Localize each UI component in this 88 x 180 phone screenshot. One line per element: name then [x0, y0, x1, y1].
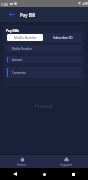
- staticText: Subscriber ID: [53, 36, 73, 40]
- staticText: Home: [17, 163, 27, 167]
- button[interactable]: Proceed: [0, 101, 88, 110]
- staticText: Support: [60, 163, 73, 167]
- button[interactable]: Support: [44, 155, 88, 168]
- button[interactable]: Mobile Number: [7, 34, 43, 41]
- staticText: Pay Bill: [20, 12, 36, 18]
- staticText: 7:28: [1, 2, 8, 6]
- button[interactable]: Mobile Number: [6, 45, 82, 52]
- button[interactable]: Subscriber ID: [44, 33, 82, 42]
- button[interactable]: Comments: [6, 67, 82, 78]
- button[interactable]: Back: [0, 7, 17, 22]
- staticText: Amount: [12, 58, 23, 62]
- button[interactable]: Back: [0, 168, 30, 180]
- staticText: Mobile Number: [12, 47, 32, 51]
- button[interactable]: Recents: [59, 168, 88, 180]
- button[interactable]: Home: [0, 155, 44, 168]
- button[interactable]: Amount: [6, 56, 82, 63]
- staticText: Comments: [12, 71, 26, 75]
- staticText: Pay Bills: [6, 29, 20, 33]
- staticText: Proceed: [35, 103, 53, 109]
- button[interactable]: Home: [30, 168, 59, 180]
- staticText: Mobile Number: [14, 36, 37, 40]
